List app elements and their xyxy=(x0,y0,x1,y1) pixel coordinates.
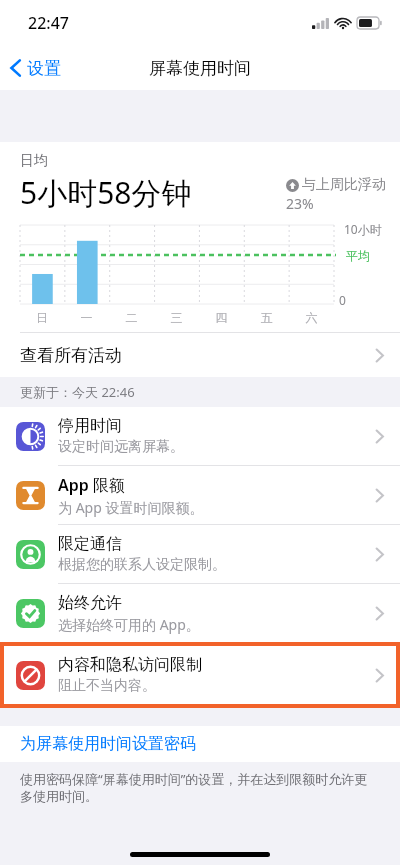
staticText: 23% xyxy=(286,194,314,213)
staticText: App 限额 xyxy=(58,474,125,496)
staticText: 六 xyxy=(289,310,334,325)
button[interactable]: 查看所有活动 xyxy=(0,333,400,377)
staticText: 设定时间远离屏幕。 xyxy=(58,438,184,456)
staticText: 设置 xyxy=(27,58,61,79)
staticText: 四 xyxy=(199,310,244,325)
staticText: 限定通信 xyxy=(58,534,122,554)
staticText: 查看所有活动 xyxy=(20,345,122,366)
button[interactable]: 限定通信 xyxy=(0,524,400,583)
staticText: 日 xyxy=(20,310,64,325)
staticText: 为屏幕使用时间设置密码 xyxy=(20,734,196,754)
staticText: 选择始终可用的 App。 xyxy=(58,615,200,634)
staticText: 二 xyxy=(109,310,154,325)
staticText: 0 xyxy=(339,292,346,308)
staticText: 屏幕使用时间 xyxy=(149,58,251,79)
staticText: 使用密码保障“屏幕使用时间”的设置，并在达到限额时允许更多使用时间。 xyxy=(20,770,380,805)
staticText: 与上周比浮动 xyxy=(302,176,386,194)
staticText: 内容和隐私访问限制 xyxy=(58,655,202,675)
staticText: 更新于：今天 22:46 xyxy=(20,383,135,401)
staticText: 三 xyxy=(154,310,199,325)
staticText: 5小时58分钟 xyxy=(20,172,192,213)
staticText: 日均 xyxy=(20,152,48,170)
staticText: 一 xyxy=(64,310,109,325)
staticText: 10小时 xyxy=(344,221,382,237)
staticText: 22:47 xyxy=(28,12,69,34)
staticText: 五 xyxy=(244,310,289,325)
staticText: 阻止不当内容。 xyxy=(58,677,156,695)
button[interactable]: 为屏幕使用时间设置密码 xyxy=(0,726,400,762)
button[interactable]: 内容和隐私访问限制 xyxy=(0,642,400,708)
staticText: 停用时间 xyxy=(58,416,122,436)
staticText: 根据您的联系人设定限制。 xyxy=(58,556,226,574)
button[interactable]: 停用时间 xyxy=(0,407,400,465)
staticText: 始终允许 xyxy=(58,593,122,613)
button[interactable]: App 限额 xyxy=(0,465,400,524)
button[interactable]: 设置 xyxy=(0,48,69,88)
button[interactable]: 始终允许 xyxy=(0,583,400,642)
staticText: 平均 xyxy=(346,248,370,263)
staticText: 为 App 设置时间限额。 xyxy=(58,498,204,517)
